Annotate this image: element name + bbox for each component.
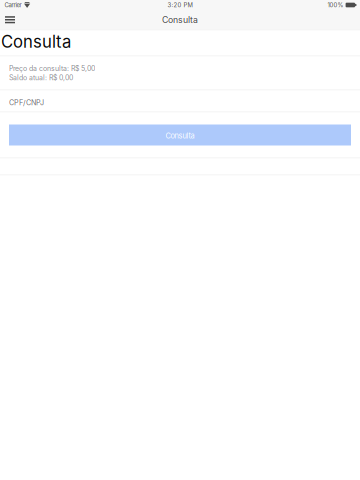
button[interactable]: Menu	[0, 10, 21, 29]
staticText: Consulta	[162, 15, 198, 25]
staticText: 3:20 PM	[167, 1, 192, 9]
staticText: Carrier	[4, 1, 21, 9]
staticText: CPF/CNPJ	[9, 98, 44, 107]
staticText: Consulta	[165, 131, 194, 140]
staticText: Consulta	[1, 32, 71, 51]
staticText: 100%	[328, 1, 344, 9]
staticText: Preço da consulta: R$ 5,00	[9, 64, 95, 73]
staticText: Saldo atual: R$ 0,00	[9, 74, 73, 82]
button[interactable]: Consulta	[0, 112, 360, 157]
button[interactable]: CPF/CNPJ	[0, 90, 360, 111]
